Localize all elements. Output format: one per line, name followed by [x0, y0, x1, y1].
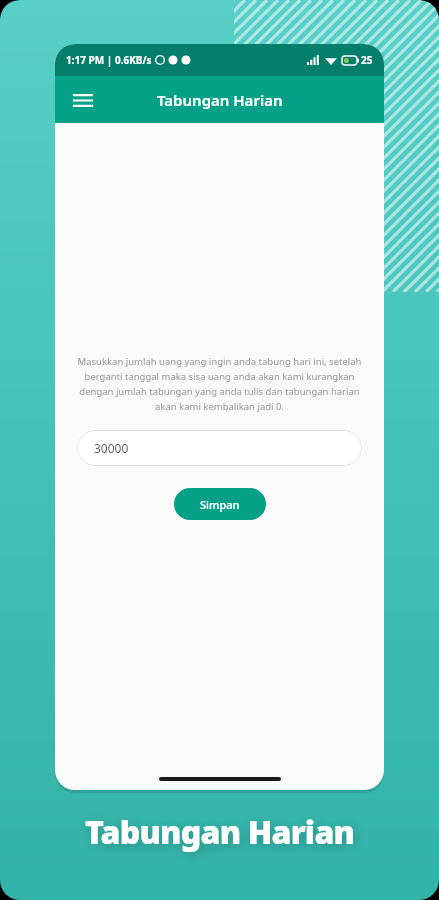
- staticText: 1:17 PM | 0.6KB/s: [66, 53, 152, 67]
- staticText: Masukkan jumlah uang yang ingin anda tab…: [77, 355, 362, 413]
- staticText: 30000: [94, 440, 129, 456]
- button[interactable]: 30000: [77, 430, 362, 466]
- button[interactable]: Simpan: [174, 488, 266, 520]
- staticText: 25: [361, 53, 373, 67]
- staticText: Simpan: [200, 497, 240, 512]
- staticText: Tabungan Harian: [85, 810, 355, 854]
- button[interactable]: Menu: [65, 82, 101, 118]
- staticText: Tabungan Harian: [157, 90, 283, 110]
